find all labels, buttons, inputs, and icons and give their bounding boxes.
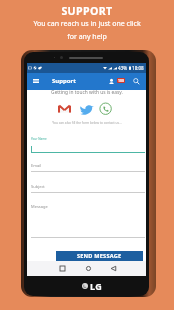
button[interactable]: Twitter bbox=[80, 103, 94, 115]
staticText: Subject bbox=[31, 184, 45, 189]
staticText: 100 bbox=[118, 78, 124, 83]
staticText: 18:08 bbox=[132, 65, 144, 71]
button[interactable]: SEND MESSAGE bbox=[56, 251, 143, 261]
staticText: You can also fill the form below to cont… bbox=[52, 121, 122, 125]
staticText: Email bbox=[31, 163, 42, 168]
button[interactable]: WhatsApp bbox=[99, 102, 114, 116]
button[interactable]: Search bbox=[131, 76, 142, 87]
staticText: SUPPORT bbox=[61, 4, 113, 18]
button[interactable]: Account bbox=[106, 76, 116, 86]
staticText: Getting in touch with us is easy. bbox=[51, 89, 123, 96]
button[interactable]: Back bbox=[107, 262, 119, 274]
button[interactable]: Email us bbox=[58, 103, 71, 115]
staticText: Message bbox=[31, 204, 48, 209]
staticText: LG bbox=[90, 280, 102, 292]
button[interactable]: Recents bbox=[56, 262, 68, 274]
staticText: Support bbox=[52, 77, 76, 85]
staticText: Your Name bbox=[31, 137, 47, 141]
staticText: You can reach us in just one click for a… bbox=[33, 19, 141, 41]
button[interactable]: Home bbox=[82, 262, 94, 274]
button[interactable]: 100 bbox=[117, 78, 125, 83]
staticText: SEND MESSAGE bbox=[77, 252, 122, 260]
button[interactable]: Open navigation menu bbox=[30, 75, 42, 87]
staticText: 43% bbox=[118, 65, 128, 71]
